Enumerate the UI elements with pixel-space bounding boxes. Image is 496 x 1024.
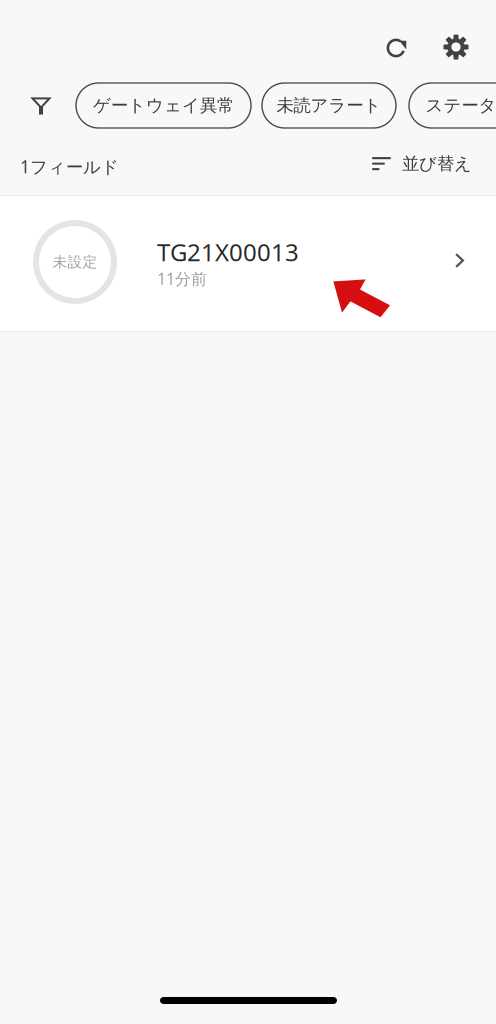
button[interactable]: Filter xyxy=(24,84,58,128)
staticText: ステータス xyxy=(425,95,496,116)
staticText: 11分前 xyxy=(157,268,207,289)
button[interactable]: Settings xyxy=(434,25,478,69)
staticText: 1フィールド xyxy=(20,155,119,178)
staticText: 並び替え xyxy=(402,153,472,174)
button[interactable]: Refresh xyxy=(374,26,418,70)
button[interactable]: ゲートウェイ異常 xyxy=(76,83,251,128)
button[interactable]: ステータス xyxy=(409,83,496,128)
staticText: 未読アラート xyxy=(276,95,381,116)
button[interactable]: 未設定 xyxy=(0,196,496,331)
staticText: 未設定 xyxy=(52,253,97,271)
staticText: ゲートウェイ異常 xyxy=(93,95,234,116)
staticText: TG21X00013 xyxy=(157,236,299,268)
button[interactable]: 未読アラート xyxy=(262,83,396,128)
button[interactable]: 並び替え xyxy=(372,153,472,174)
